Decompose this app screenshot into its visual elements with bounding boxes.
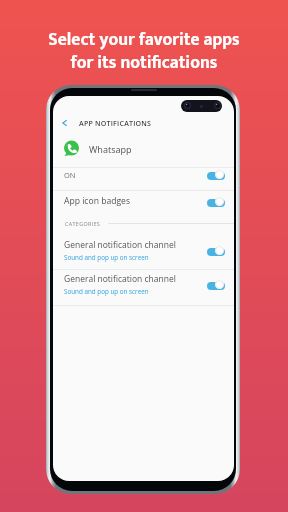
button[interactable] [207, 197, 225, 206]
staticText: Sound and pop up on screen [64, 287, 149, 296]
staticText: APP NOTIFICATIONS [79, 118, 152, 128]
staticText: Select your favorite apps for its notifi… [48, 25, 240, 77]
button[interactable]: General notification channel [53, 237, 234, 263]
staticText: General notification channel [64, 273, 176, 285]
staticText: ON [64, 170, 76, 180]
other: Back [62, 120, 67, 126]
button[interactable]: General notification channel [53, 271, 234, 297]
button[interactable] [207, 246, 225, 255]
staticText: CATEGORIES [65, 220, 101, 227]
staticText: General notification channel [64, 239, 176, 251]
button[interactable] [207, 280, 225, 289]
button[interactable]: Back [53, 111, 234, 135]
button[interactable]: App icon badges [53, 189, 234, 213]
button[interactable]: Whatsapp [53, 136, 234, 161]
staticText: Whatsapp [89, 143, 132, 155]
button[interactable]: ON [53, 163, 234, 186]
staticText: App icon badges [64, 195, 131, 207]
button[interactable] [207, 170, 225, 179]
staticText: Sound and pop up on screen [64, 253, 149, 262]
